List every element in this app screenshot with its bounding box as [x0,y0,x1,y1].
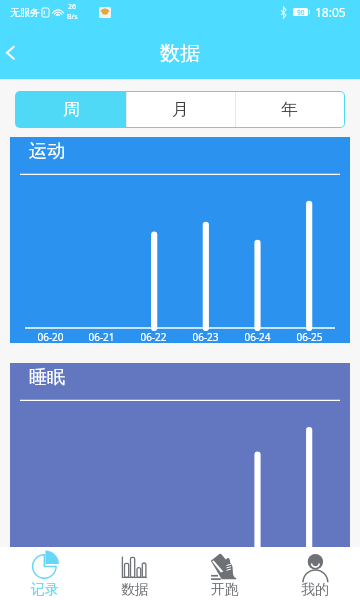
staticText: 数据 [160,41,200,66]
staticText: 18:05 [315,4,346,20]
staticText: 06-23 [192,330,219,344]
staticText: 运动 [29,140,65,163]
staticText: 记录 [31,581,59,599]
staticText: 06-24 [244,330,271,344]
button[interactable]: 记录 [0,547,90,600]
staticText: 我的 [301,581,329,599]
staticText: B/s [67,12,78,22]
button[interactable]: 月 [126,92,235,127]
staticText: 90 [297,8,305,16]
button[interactable]: 周 [16,92,126,127]
button[interactable]: 我的 [270,547,360,600]
staticText: 开跑 [211,581,239,599]
staticText: 06-20 [37,330,64,344]
staticText: 06-21 [88,330,115,344]
button[interactable]: 开跑 [180,547,270,600]
staticText: 月 [172,99,189,120]
staticText: 睡眠 [29,366,65,389]
staticText: 无服务 [10,6,40,19]
staticText: 26 [68,2,77,12]
staticText: 06-25 [296,330,323,344]
staticText: 年 [281,99,298,120]
button[interactable]: 年 [235,92,344,127]
staticText: 06-22 [140,330,167,344]
staticText: 数据 [121,581,149,599]
staticText: 周 [63,99,80,120]
button[interactable]: Back [0,26,36,78]
button[interactable]: 数据 [90,547,180,600]
